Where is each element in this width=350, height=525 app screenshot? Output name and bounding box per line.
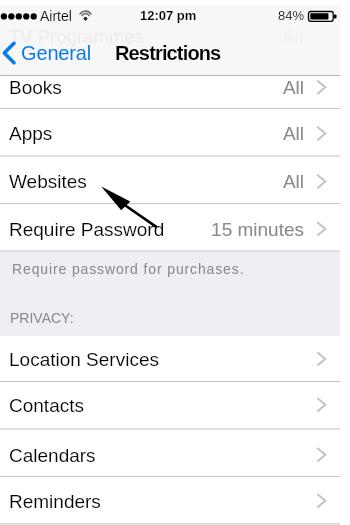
staticText: TV Programmes <box>9 26 144 47</box>
button[interactable]: Calendars <box>0 430 340 478</box>
staticText: Books <box>9 77 62 98</box>
staticText: Location Services <box>9 349 159 370</box>
staticText: Websites <box>9 171 87 192</box>
staticText: All <box>0 123 304 144</box>
staticText: PRIVACY: <box>10 310 74 326</box>
staticText: Airtel <box>40 8 72 24</box>
button[interactable]: Contacts <box>0 382 340 430</box>
staticText: 15 minutes <box>0 219 304 240</box>
staticText: Apps <box>9 123 53 144</box>
other: Back <box>0 36 100 70</box>
button[interactable]: Require Password <box>0 204 340 252</box>
button[interactable]: Apps <box>0 109 340 157</box>
staticText: 84% <box>278 8 305 23</box>
staticText: Reminders <box>9 491 101 512</box>
staticText: Require Password <box>9 219 165 240</box>
button[interactable]: Reminders <box>0 477 340 525</box>
staticText: Calendars <box>9 445 96 466</box>
staticText: Require password for purchases. <box>12 261 245 277</box>
button[interactable]: Books <box>0 62 340 110</box>
staticText: Contacts <box>9 395 84 416</box>
staticText: Restrictions <box>115 42 221 64</box>
button[interactable]: Location Services <box>0 336 340 382</box>
staticText: All <box>0 77 304 98</box>
button[interactable]: Websites <box>0 157 340 205</box>
button[interactable]: Back <box>0 36 100 70</box>
staticText: General <box>21 42 92 64</box>
staticText: 12:07 pm <box>140 8 197 23</box>
staticText: All <box>0 171 304 192</box>
